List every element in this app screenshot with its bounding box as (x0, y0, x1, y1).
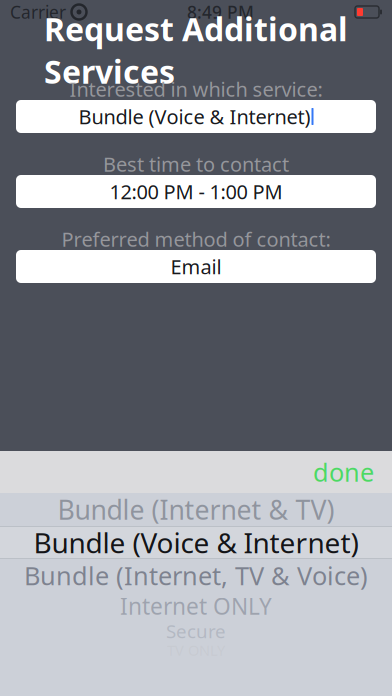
staticText: Bundle (Voice & Internet) (78, 103, 310, 130)
staticText: Internet ONLY (120, 591, 272, 621)
staticText: Bundle (Voice & Internet) (33, 524, 358, 561)
staticText: Best time to contact (103, 151, 289, 177)
staticText (66, 0, 71, 23)
button[interactable]: Bundle (Voice & Internet) (16, 100, 376, 133)
staticText: Email (170, 253, 221, 280)
button[interactable]: done (299, 447, 388, 497)
staticText: 8:49 PM (187, 0, 254, 23)
staticText: Request Additional Services (44, 7, 348, 92)
staticText: Interested in which service: (69, 76, 322, 102)
staticText: 12:00 PM - 1:00 PM (109, 178, 282, 205)
staticText: Preferred method of contact: (61, 226, 330, 252)
staticText: Carrier (10, 0, 66, 23)
staticText: Bundle (Internet & TV) (57, 492, 334, 527)
staticText: Bundle (Internet, TV & Voice) (24, 559, 368, 592)
button[interactable]: 12:00 PM - 1:00 PM (16, 175, 376, 208)
staticText: Secure (166, 619, 226, 643)
button[interactable]: Email (16, 250, 376, 283)
staticText: done (313, 455, 374, 489)
